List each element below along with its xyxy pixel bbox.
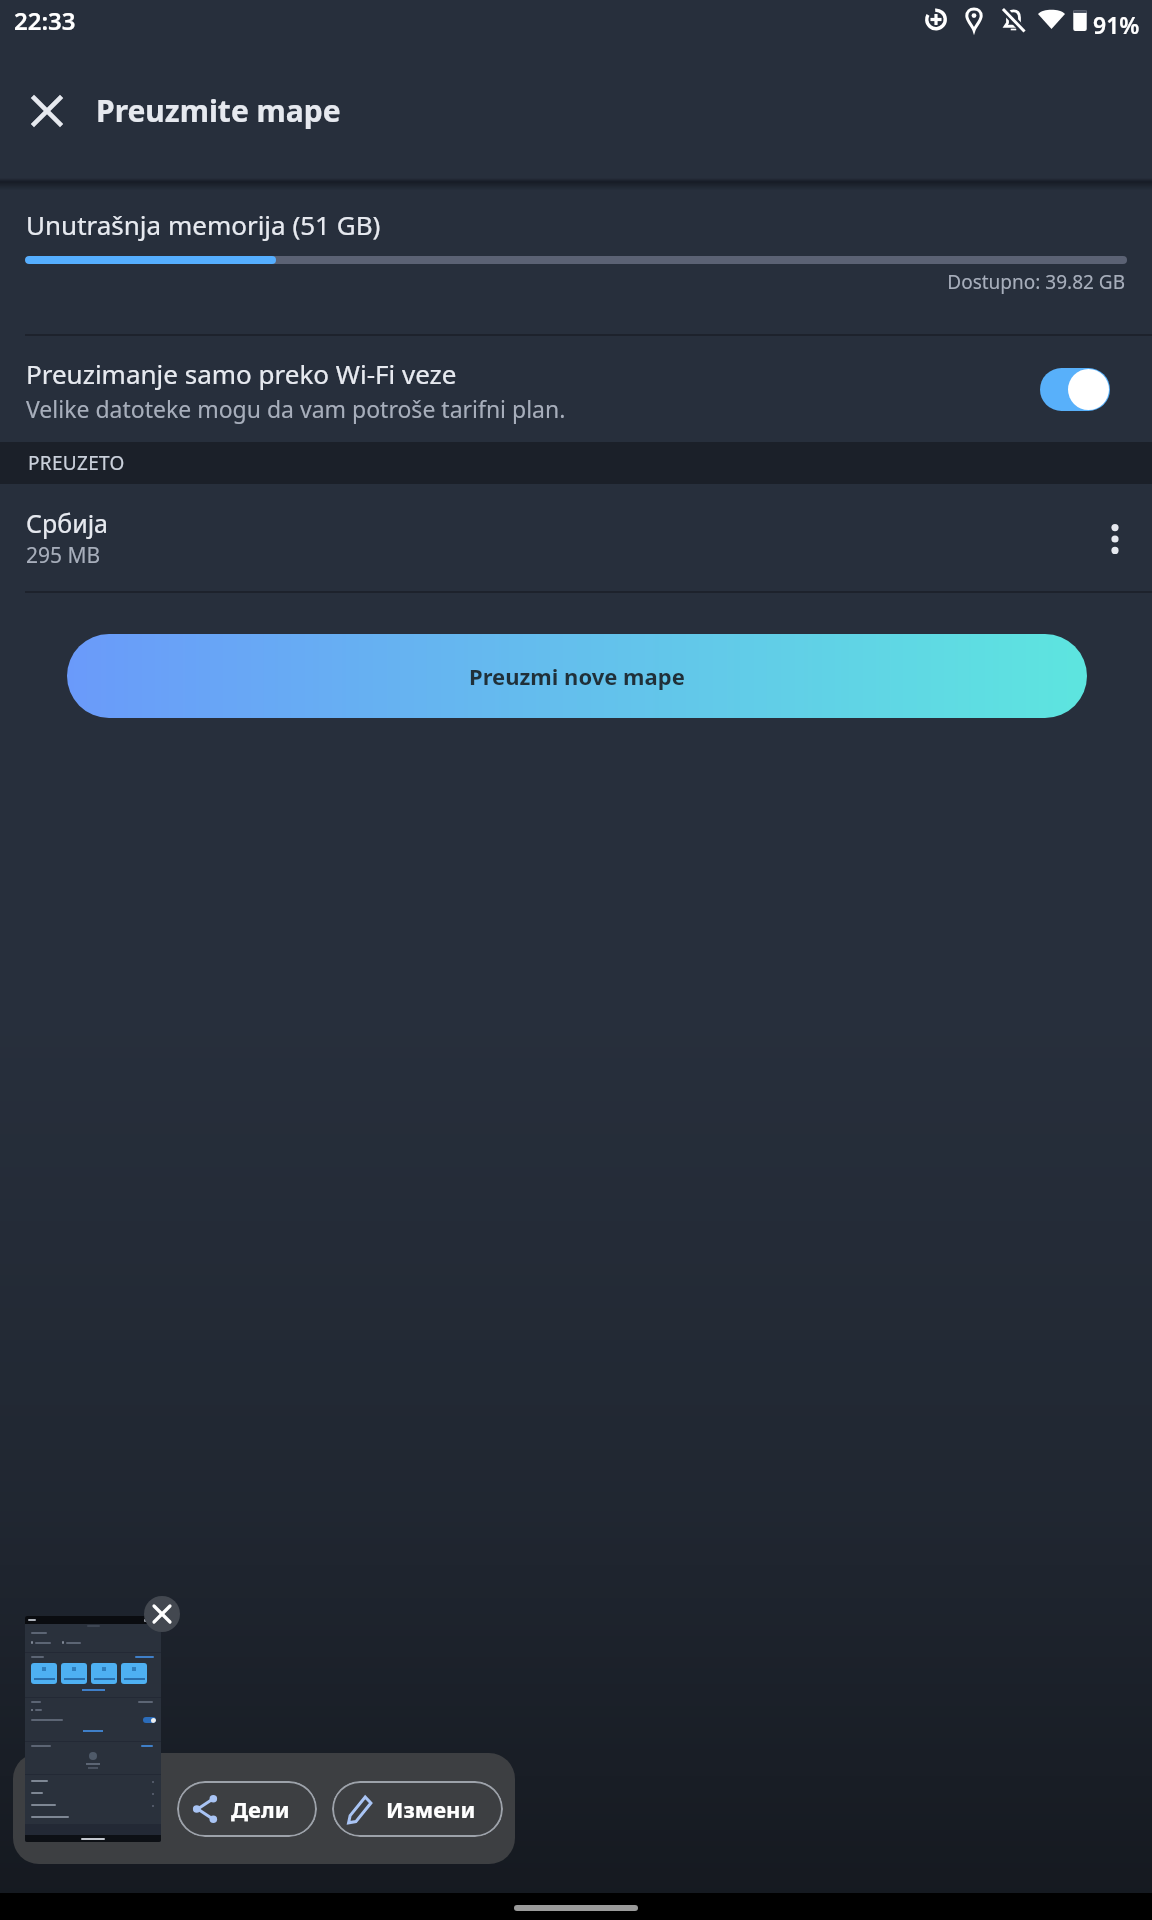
button[interactable]: Preuzmi nove mape bbox=[67, 634, 1087, 718]
button[interactable]: Дели bbox=[177, 1781, 317, 1837]
button[interactable]: Close bbox=[14, 78, 80, 144]
staticText: 295 MB bbox=[26, 541, 101, 570]
staticText: Дели bbox=[231, 1794, 290, 1824]
button[interactable]: Измени bbox=[332, 1781, 503, 1837]
staticText: Velike datoteke mogu da vam potroše tari… bbox=[26, 393, 566, 424]
button[interactable]: Србија bbox=[0, 484, 1152, 592]
button[interactable]: Preuzimanje samo preko Wi-Fi veze bbox=[0, 334, 1152, 442]
staticText: 91% bbox=[1093, 9, 1140, 40]
staticText: PREUZETO bbox=[28, 450, 125, 476]
button[interactable]: Dismiss screenshot bbox=[144, 1596, 180, 1632]
button[interactable]: More options bbox=[1088, 512, 1142, 566]
staticText: Preuzimanje samo preko Wi-Fi veze bbox=[26, 356, 457, 391]
staticText: Измени bbox=[386, 1794, 476, 1824]
staticText: Србија bbox=[26, 506, 109, 540]
staticText: 22:33 bbox=[14, 4, 76, 37]
button[interactable]: Download over Wi-Fi only bbox=[1040, 368, 1110, 411]
staticText: Preuzmi nove mape bbox=[469, 661, 685, 691]
staticText: Unutrašnja memorija (51 GB) bbox=[26, 207, 381, 242]
staticText: Preuzmite mape bbox=[96, 90, 341, 131]
staticText: Dostupno: 39.82 GB bbox=[0, 269, 1125, 295]
